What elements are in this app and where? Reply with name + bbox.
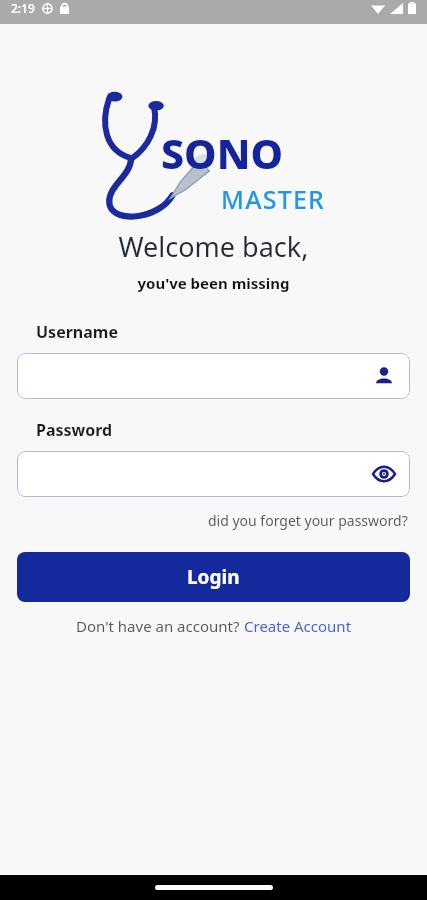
- staticText: 2:19: [11, 0, 35, 16]
- staticText: SONO: [161, 125, 283, 181]
- button[interactable]: Username field: [17, 353, 410, 399]
- staticText: MASTER: [221, 182, 326, 216]
- staticText: Username: [36, 321, 118, 343]
- staticText: Don't have an account?: [76, 616, 244, 636]
- staticText: you've been missing: [0, 273, 427, 293]
- button[interactable]: Username field: [372, 364, 396, 388]
- staticText: Password: [36, 419, 113, 441]
- button[interactable]: Show password: [372, 462, 396, 486]
- button[interactable]: Show password: [17, 451, 410, 497]
- staticText: Login: [187, 564, 240, 590]
- staticText: Welcome back,: [0, 228, 427, 265]
- button[interactable]: Login: [17, 552, 410, 602]
- button[interactable]: Create Account: [244, 616, 352, 636]
- button[interactable]: did you forget your password?: [206, 509, 410, 532]
